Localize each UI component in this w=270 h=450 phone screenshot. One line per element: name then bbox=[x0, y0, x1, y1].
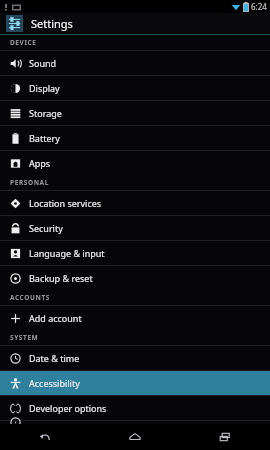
staticText: Apps bbox=[29, 157, 51, 169]
button[interactable]: Back bbox=[0, 424, 90, 450]
staticText: SYSTEM bbox=[10, 333, 39, 342]
staticText: PERSONAL bbox=[10, 178, 49, 187]
button[interactable]: Sound bbox=[0, 51, 270, 75]
button[interactable]: Developer options bbox=[0, 396, 270, 420]
staticText: Security bbox=[29, 222, 63, 234]
staticText: Language & input bbox=[29, 247, 105, 259]
staticText: Battery bbox=[29, 132, 60, 144]
button[interactable]: About tablet bbox=[0, 421, 270, 424]
button[interactable]: Home bbox=[90, 424, 180, 450]
button[interactable]: Display bbox=[0, 76, 270, 100]
staticText: Developer options bbox=[29, 402, 107, 414]
staticText: Add account bbox=[29, 312, 82, 324]
staticText: Accessibility bbox=[29, 377, 80, 389]
button[interactable]: Storage bbox=[0, 101, 270, 125]
button[interactable]: Language & input bbox=[0, 241, 270, 265]
staticText: Backup & reset bbox=[29, 272, 93, 284]
button[interactable]: Date & time bbox=[0, 346, 270, 370]
staticText: ACCOUNTS bbox=[10, 293, 50, 302]
staticText: Settings bbox=[31, 16, 73, 31]
button[interactable]: Backup & reset bbox=[0, 266, 270, 290]
button[interactable]: Add account bbox=[0, 306, 270, 330]
staticText: Storage bbox=[29, 107, 62, 119]
staticText: Location services bbox=[29, 197, 102, 209]
staticText: DEVICE bbox=[10, 38, 37, 47]
button[interactable]: Accessibility bbox=[0, 371, 270, 395]
staticText: Date & time bbox=[29, 352, 80, 364]
button[interactable]: Recent apps bbox=[180, 424, 270, 450]
button[interactable]: Apps bbox=[0, 151, 270, 175]
button[interactable]: Location services bbox=[0, 191, 270, 215]
button[interactable]: Security bbox=[0, 216, 270, 240]
staticText: Display bbox=[29, 82, 60, 94]
button[interactable]: Battery bbox=[0, 126, 270, 150]
staticText: Sound bbox=[29, 57, 57, 69]
staticText: 6:24 bbox=[251, 1, 267, 12]
